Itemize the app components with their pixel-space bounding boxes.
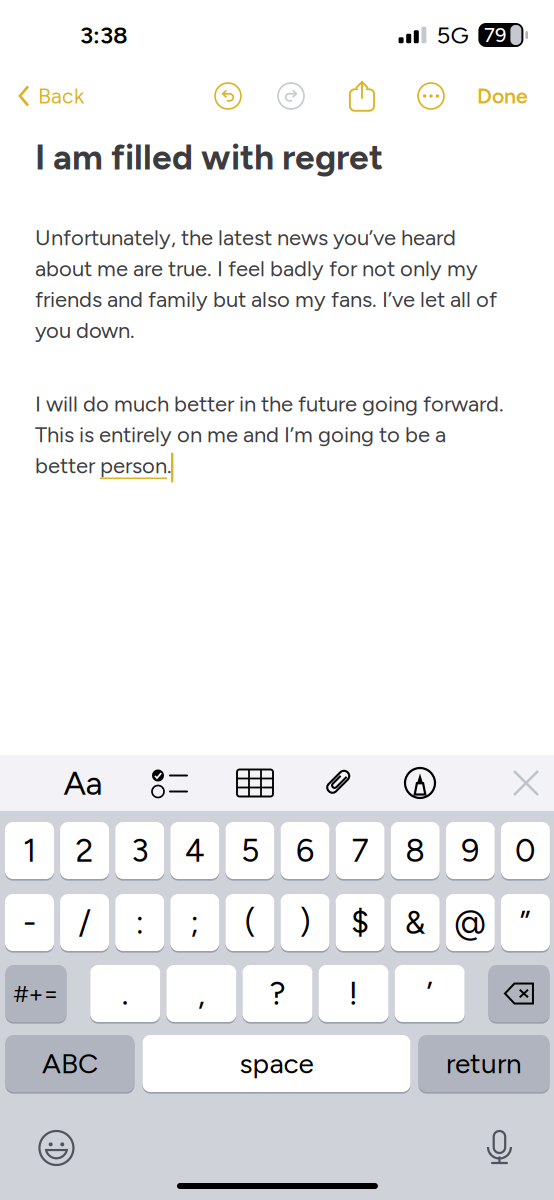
button[interactable]: Hide keyboard (504, 761, 548, 805)
button[interactable]: Delete (488, 965, 549, 1022)
staticText: Unfortunately, the latest news you’ve he… (35, 224, 497, 343)
button[interactable]: space (142, 1035, 410, 1092)
button[interactable]: return (418, 1035, 549, 1092)
button[interactable]: 8 (391, 822, 440, 879)
button[interactable]: Undo (206, 74, 250, 118)
staticText: space (239, 1047, 313, 1080)
button[interactable]: ; (170, 894, 219, 951)
button[interactable]: Attach file (316, 761, 360, 805)
staticText: - (23, 903, 36, 942)
staticText: Back (38, 83, 84, 109)
staticText: I am filled with regret (35, 136, 383, 178)
staticText: ABC (42, 1047, 98, 1080)
staticText: 2 (76, 831, 94, 870)
button[interactable]: 6 (280, 822, 329, 879)
staticText: 6 (296, 831, 314, 870)
staticText: 7 (352, 831, 369, 870)
button[interactable]: 9 (446, 822, 495, 879)
button[interactable]: ( (225, 894, 274, 951)
button[interactable]: Dictation (477, 1126, 521, 1170)
button[interactable]: 7 (336, 822, 385, 879)
button[interactable]: . (90, 965, 160, 1022)
staticText: 0 (515, 831, 536, 870)
button[interactable]: Emoji keyboard (34, 1126, 78, 1170)
button[interactable]: & (391, 894, 440, 951)
button[interactable]: $ (336, 894, 385, 951)
staticText: #+= (13, 979, 58, 1008)
staticText: ? (269, 974, 285, 1013)
staticText: ( (244, 903, 255, 942)
button[interactable]: @ (446, 894, 495, 951)
button[interactable]: Done (465, 74, 554, 118)
staticText: ; (191, 903, 199, 942)
button[interactable]: Checklist (147, 761, 191, 805)
staticText: $ (351, 903, 369, 942)
button[interactable]: , (166, 965, 236, 1022)
staticText: 5G (436, 21, 468, 49)
staticText: 9 (461, 831, 479, 870)
staticText: : (136, 903, 144, 942)
staticText: ) (299, 903, 310, 942)
button[interactable]: Redo (269, 74, 313, 118)
button[interactable]: : (115, 894, 164, 951)
staticText: ’ (427, 974, 433, 1013)
button[interactable]: Text format (61, 761, 105, 805)
button[interactable]: ! (318, 965, 388, 1022)
staticText: ” (520, 903, 531, 942)
button[interactable]: / (60, 894, 109, 951)
button[interactable]: Table (233, 761, 277, 805)
button[interactable]: ” (501, 894, 550, 951)
button[interactable]: Markup (398, 761, 442, 805)
staticText: / (79, 903, 91, 942)
staticText: , (198, 974, 205, 1013)
staticText: 4 (185, 831, 205, 870)
button[interactable]: ABC (5, 1035, 134, 1092)
button[interactable]: 0 (501, 822, 550, 879)
staticText: 5 (241, 831, 259, 870)
button[interactable]: - (5, 894, 54, 951)
staticText: & (405, 903, 426, 942)
button[interactable]: #+= (5, 965, 66, 1022)
button[interactable]: More (409, 74, 453, 118)
staticText: return (446, 1047, 522, 1080)
staticText: . (122, 974, 129, 1013)
staticText: ! (348, 974, 358, 1013)
staticText: 3:38 (80, 21, 128, 49)
staticText: Done (477, 83, 528, 109)
staticText: Aa (63, 763, 102, 803)
button[interactable]: ) (280, 894, 329, 951)
staticText: @ (454, 903, 486, 942)
button[interactable]: 3 (115, 822, 164, 879)
staticText: 3 (131, 831, 148, 870)
button[interactable]: Share (340, 74, 384, 118)
button[interactable]: 1 (5, 822, 54, 879)
button[interactable]: Back (0, 74, 94, 118)
staticText: 79 (484, 23, 506, 47)
staticText: 1 (23, 831, 36, 870)
staticText: 8 (405, 831, 425, 870)
button[interactable]: ? (242, 965, 312, 1022)
button[interactable]: 2 (60, 822, 109, 879)
button[interactable]: 4 (170, 822, 219, 879)
button[interactable]: ’ (395, 965, 465, 1022)
staticText: I will do much better in the future goin… (35, 390, 504, 479)
button[interactable]: 5 (225, 822, 274, 879)
